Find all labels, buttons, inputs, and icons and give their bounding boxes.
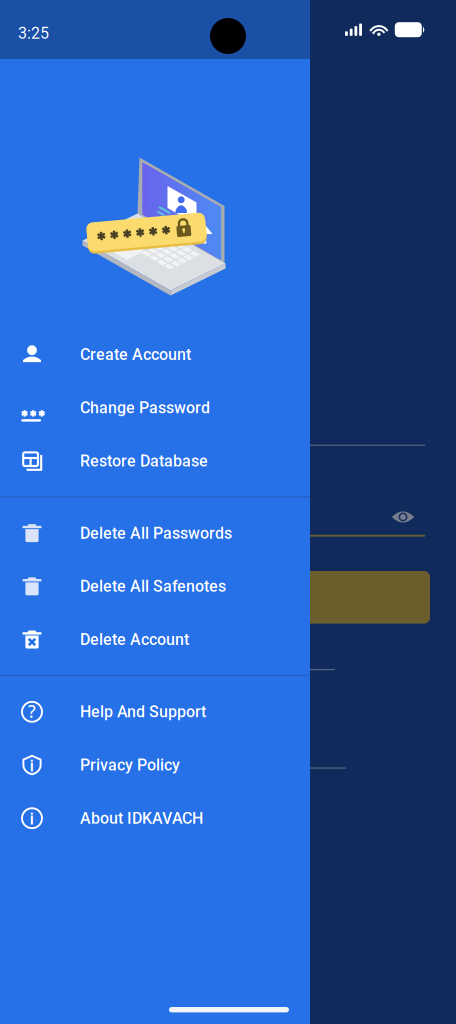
staticText: Create Account [80,345,191,364]
staticText: Delete Account [80,630,189,649]
staticText: Delete All Safenotes [80,577,226,596]
button[interactable]: i [0,792,310,845]
button[interactable]: ? [0,685,310,738]
button[interactable]: Login With Phone [213,660,335,680]
button[interactable] [30,571,430,624]
staticText: i [29,755,34,776]
staticText: ? [28,700,36,723]
staticText: i [29,808,34,829]
button[interactable]: Change Password [0,381,310,434]
button[interactable]: Create Account [0,328,310,381]
staticText: Change Password [80,398,210,417]
staticText: 3:25 [18,24,49,43]
staticText: Privacy Policy [80,756,180,774]
staticText: Login With Phone [213,652,289,689]
button[interactable]: Delete All Safenotes [0,560,310,613]
button[interactable]: Show password [383,500,423,534]
button[interactable]: Delete Account [0,613,310,666]
button[interactable]: Delete All Passwords [0,507,310,560]
staticText: Help And Support [80,702,206,721]
staticText: Delete All Passwords [80,524,232,543]
button[interactable]: i [0,738,310,792]
button[interactable]: Open Source License [206,759,346,779]
staticText: About IDKAVACH [80,809,203,828]
staticText: Restore Database [80,452,208,470]
button[interactable]: Restore Database [0,434,310,488]
